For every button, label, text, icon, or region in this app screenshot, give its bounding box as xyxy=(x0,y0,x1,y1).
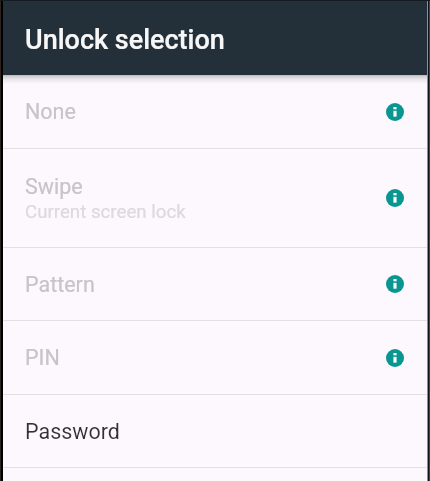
staticText: Current screen lock xyxy=(25,201,186,223)
button[interactable]: Swipe xyxy=(3,149,427,247)
button[interactable]: More information xyxy=(382,185,408,211)
button[interactable]: More information xyxy=(382,271,408,297)
button[interactable]: More information xyxy=(382,345,408,371)
staticText: Pattern xyxy=(25,272,95,297)
button[interactable]: More information xyxy=(382,99,408,125)
staticText: Unlock selection xyxy=(25,24,225,56)
button[interactable]: Password xyxy=(3,395,427,467)
button[interactable]: Pattern xyxy=(3,248,427,320)
staticText: Password xyxy=(25,419,120,444)
staticText: None xyxy=(25,99,76,124)
staticText: PIN xyxy=(25,345,60,370)
button[interactable]: PIN xyxy=(3,321,427,394)
staticText: Swipe xyxy=(25,174,83,199)
button[interactable]: None xyxy=(3,75,427,148)
